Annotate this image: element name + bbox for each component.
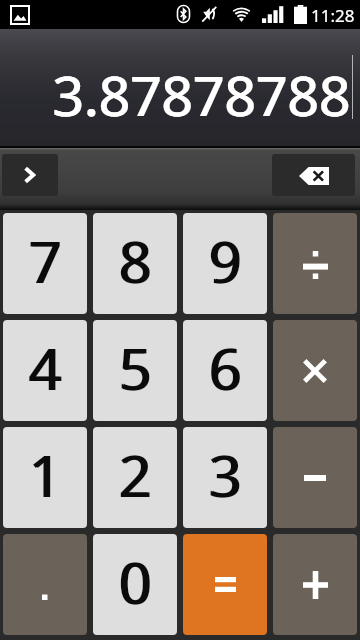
staticText: 3.87878788: [52, 57, 350, 132]
button[interactable]: Divide: [273, 213, 357, 314]
button[interactable]: 4: [3, 320, 87, 421]
staticText: 2: [120, 436, 153, 514]
staticText: 0: [118, 543, 151, 621]
staticText: 5: [118, 329, 151, 407]
staticText: 3: [208, 436, 241, 514]
button[interactable]: Decimal point: [3, 534, 87, 635]
staticText: 7: [28, 222, 61, 300]
button[interactable]: Multiply: [273, 320, 357, 421]
staticText: 1: [28, 436, 61, 514]
staticText: 3: [210, 436, 243, 514]
button[interactable]: 5: [93, 320, 177, 421]
button[interactable]: 7: [3, 213, 87, 314]
staticText: 6: [208, 329, 241, 407]
staticText: 9: [208, 222, 241, 300]
staticText: 5: [120, 329, 153, 407]
staticText: 6: [210, 329, 243, 407]
button[interactable]: 2: [93, 427, 177, 528]
staticText: 4: [30, 329, 63, 407]
staticText: 9: [210, 222, 243, 300]
button[interactable]: Show advanced pad: [2, 154, 58, 196]
staticText: 11:28: [311, 4, 355, 27]
staticText: 4: [28, 329, 61, 407]
staticText: 3.87878788: [53, 57, 351, 132]
staticText: 2: [118, 436, 151, 514]
staticText: 0: [120, 543, 153, 621]
button[interactable]: 0: [93, 534, 177, 635]
button[interactable]: 1: [3, 427, 87, 528]
staticText: 1: [30, 436, 63, 514]
button[interactable]: Equals: [183, 534, 267, 635]
button[interactable]: 8: [93, 213, 177, 314]
button[interactable]: 6: [183, 320, 267, 421]
staticText: 7: [30, 222, 63, 300]
button[interactable]: Add: [273, 534, 357, 635]
staticText: 8: [118, 222, 151, 300]
button[interactable]: Delete: [272, 154, 355, 196]
button[interactable]: 9: [183, 213, 267, 314]
button[interactable]: 3: [183, 427, 267, 528]
staticText: 8: [120, 222, 153, 300]
button[interactable]: Subtract: [273, 427, 357, 528]
